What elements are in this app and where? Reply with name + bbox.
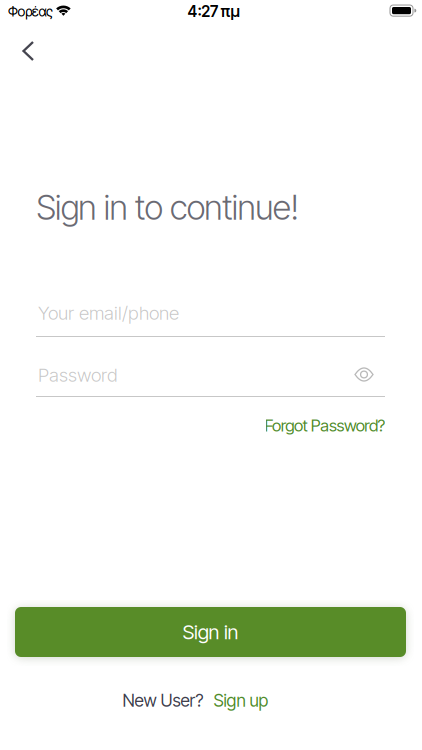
staticText: 4:27 πμ <box>188 2 239 21</box>
staticText: Sign in to continue! <box>36 187 299 228</box>
staticText: Password <box>38 364 118 386</box>
staticText: Φορέας <box>8 3 53 20</box>
button[interactable]: Back <box>4 31 48 71</box>
button[interactable]: Sign in <box>15 607 406 657</box>
button[interactable]: Show password <box>347 359 381 389</box>
button[interactable]: Forgot Password? <box>264 415 385 436</box>
staticText: Sign in <box>182 620 239 644</box>
staticText: Forgot Password? <box>264 415 385 436</box>
staticText: Your email/phone <box>38 302 179 324</box>
staticText: Sign up <box>213 690 268 711</box>
staticText: New User? <box>122 690 203 711</box>
button[interactable]: Sign up <box>213 690 268 711</box>
